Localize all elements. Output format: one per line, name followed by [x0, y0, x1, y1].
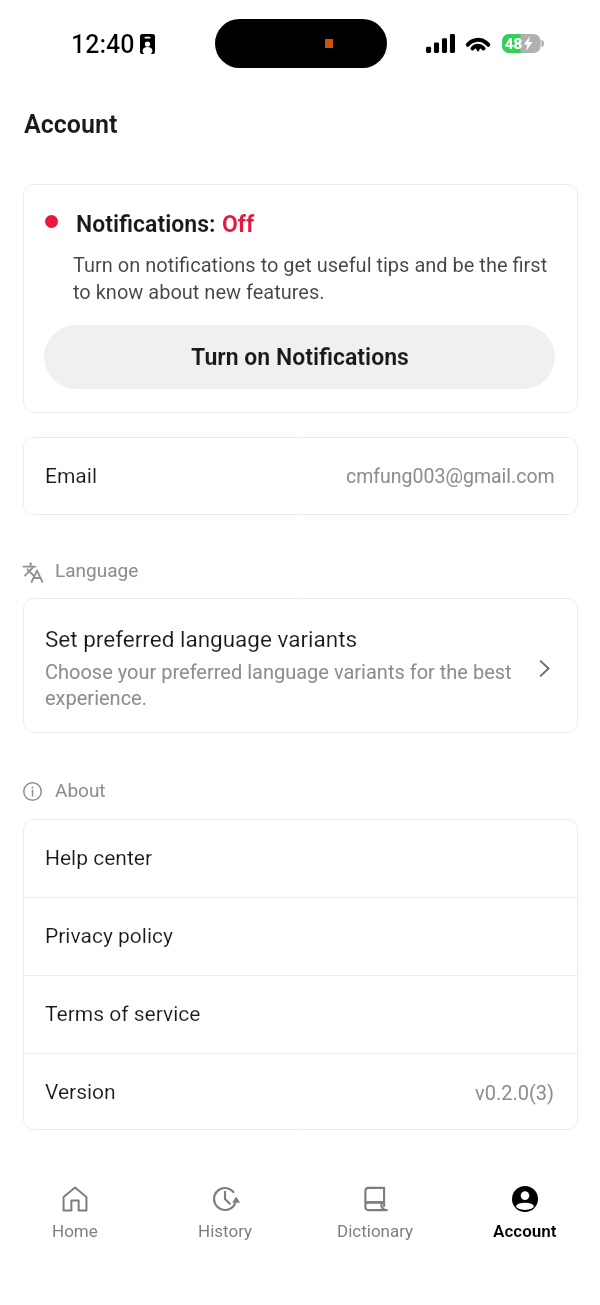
staticText: Turn on Notifications [191, 344, 409, 371]
staticText: Turn on notifications to get useful tips… [73, 253, 557, 304]
staticText: Privacy policy [45, 924, 173, 949]
staticText: Off [222, 211, 255, 238]
staticText: Home [52, 1221, 98, 1241]
staticText: Terms of service [45, 1002, 201, 1027]
staticText: Choose your preferred language variants … [45, 660, 535, 710]
button[interactable]: Version [23, 1054, 578, 1130]
button[interactable]: Home [0, 1160, 150, 1305]
staticText: 12:40 [71, 30, 135, 59]
button[interactable]: Dictionary [300, 1160, 450, 1305]
staticText: History [198, 1221, 253, 1241]
staticText: cmfung003@gmail.com [346, 465, 555, 488]
staticText: Email [45, 464, 97, 489]
button[interactable]: Email [23, 437, 578, 515]
staticText: Language [55, 559, 139, 581]
staticText: Help center [45, 846, 153, 871]
staticText: Account [24, 110, 118, 139]
button[interactable]: Privacy policy [23, 898, 578, 975]
staticText: Dictionary [337, 1221, 414, 1241]
staticText: v0.2.0(3) [475, 1081, 555, 1104]
button[interactable]: Terms of service [23, 976, 578, 1053]
staticText: About [55, 779, 106, 801]
other: Open language settings [538, 659, 553, 678]
staticText: Set preferred language variants [45, 626, 358, 652]
staticText: Notifications: [76, 211, 222, 238]
button[interactable]: History [150, 1160, 300, 1305]
button[interactable]: Help center [23, 819, 578, 897]
button[interactable]: Set preferred language variants [23, 598, 578, 733]
staticText: 48 [505, 35, 523, 53]
staticText: Account [493, 1221, 557, 1241]
staticText: Version [45, 1080, 116, 1105]
button[interactable]: Turn on Notifications [44, 325, 555, 389]
button[interactable]: Account [450, 1160, 600, 1305]
